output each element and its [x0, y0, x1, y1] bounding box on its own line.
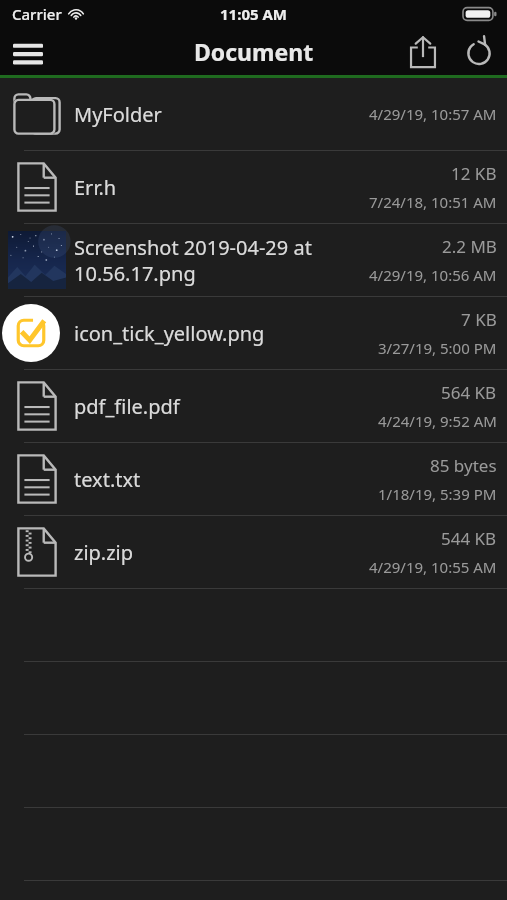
staticText: icon_tick_yellow.png [74, 320, 265, 347]
button[interactable]: Refresh [451, 28, 507, 75]
staticText: 4/24/19, 9:52 AM [378, 411, 497, 431]
button[interactable]: Menu [0, 28, 56, 75]
staticText: text.txt [74, 466, 141, 493]
button[interactable]: zip.zip [0, 516, 507, 588]
staticText: 7 KB [461, 308, 497, 331]
staticText: MyFolder [74, 101, 162, 128]
staticText: 7/24/18, 10:51 AM [369, 192, 497, 212]
staticText: Carrier [12, 4, 62, 24]
button[interactable]: text.txt [0, 443, 507, 515]
button[interactable]: Share [395, 28, 451, 75]
staticText: 11:05 AM [220, 4, 287, 24]
staticText: 3/27/19, 5:00 PM [378, 338, 497, 358]
staticText: pdf_file.pdf [74, 393, 180, 420]
button[interactable]: MyFolder [0, 78, 507, 150]
button[interactable]: Screenshot 2019-04-29 at 10.56.17.png [0, 224, 507, 296]
staticText: 1/18/19, 5:39 PM [378, 484, 497, 504]
staticText: 4/29/19, 10:56 AM [369, 265, 497, 285]
button[interactable]: icon_tick_yellow.png [0, 297, 507, 369]
button[interactable]: pdf_file.pdf [0, 370, 507, 442]
staticText: Err.h [74, 174, 117, 201]
staticText: Screenshot 2019-04-29 at 10.56.17.png [74, 234, 312, 287]
staticText: 564 KB [441, 381, 497, 404]
staticText: 85 bytes [430, 454, 497, 477]
button[interactable]: Err.h [0, 151, 507, 223]
staticText: Document [194, 36, 314, 67]
staticText: 4/29/19, 10:55 AM [369, 557, 497, 577]
staticText: 4/29/19, 10:57 AM [369, 104, 497, 124]
staticText: 12 KB [451, 162, 497, 185]
staticText: zip.zip [74, 539, 134, 566]
staticText: 544 KB [441, 527, 497, 550]
staticText: 2.2 MB [442, 235, 497, 258]
